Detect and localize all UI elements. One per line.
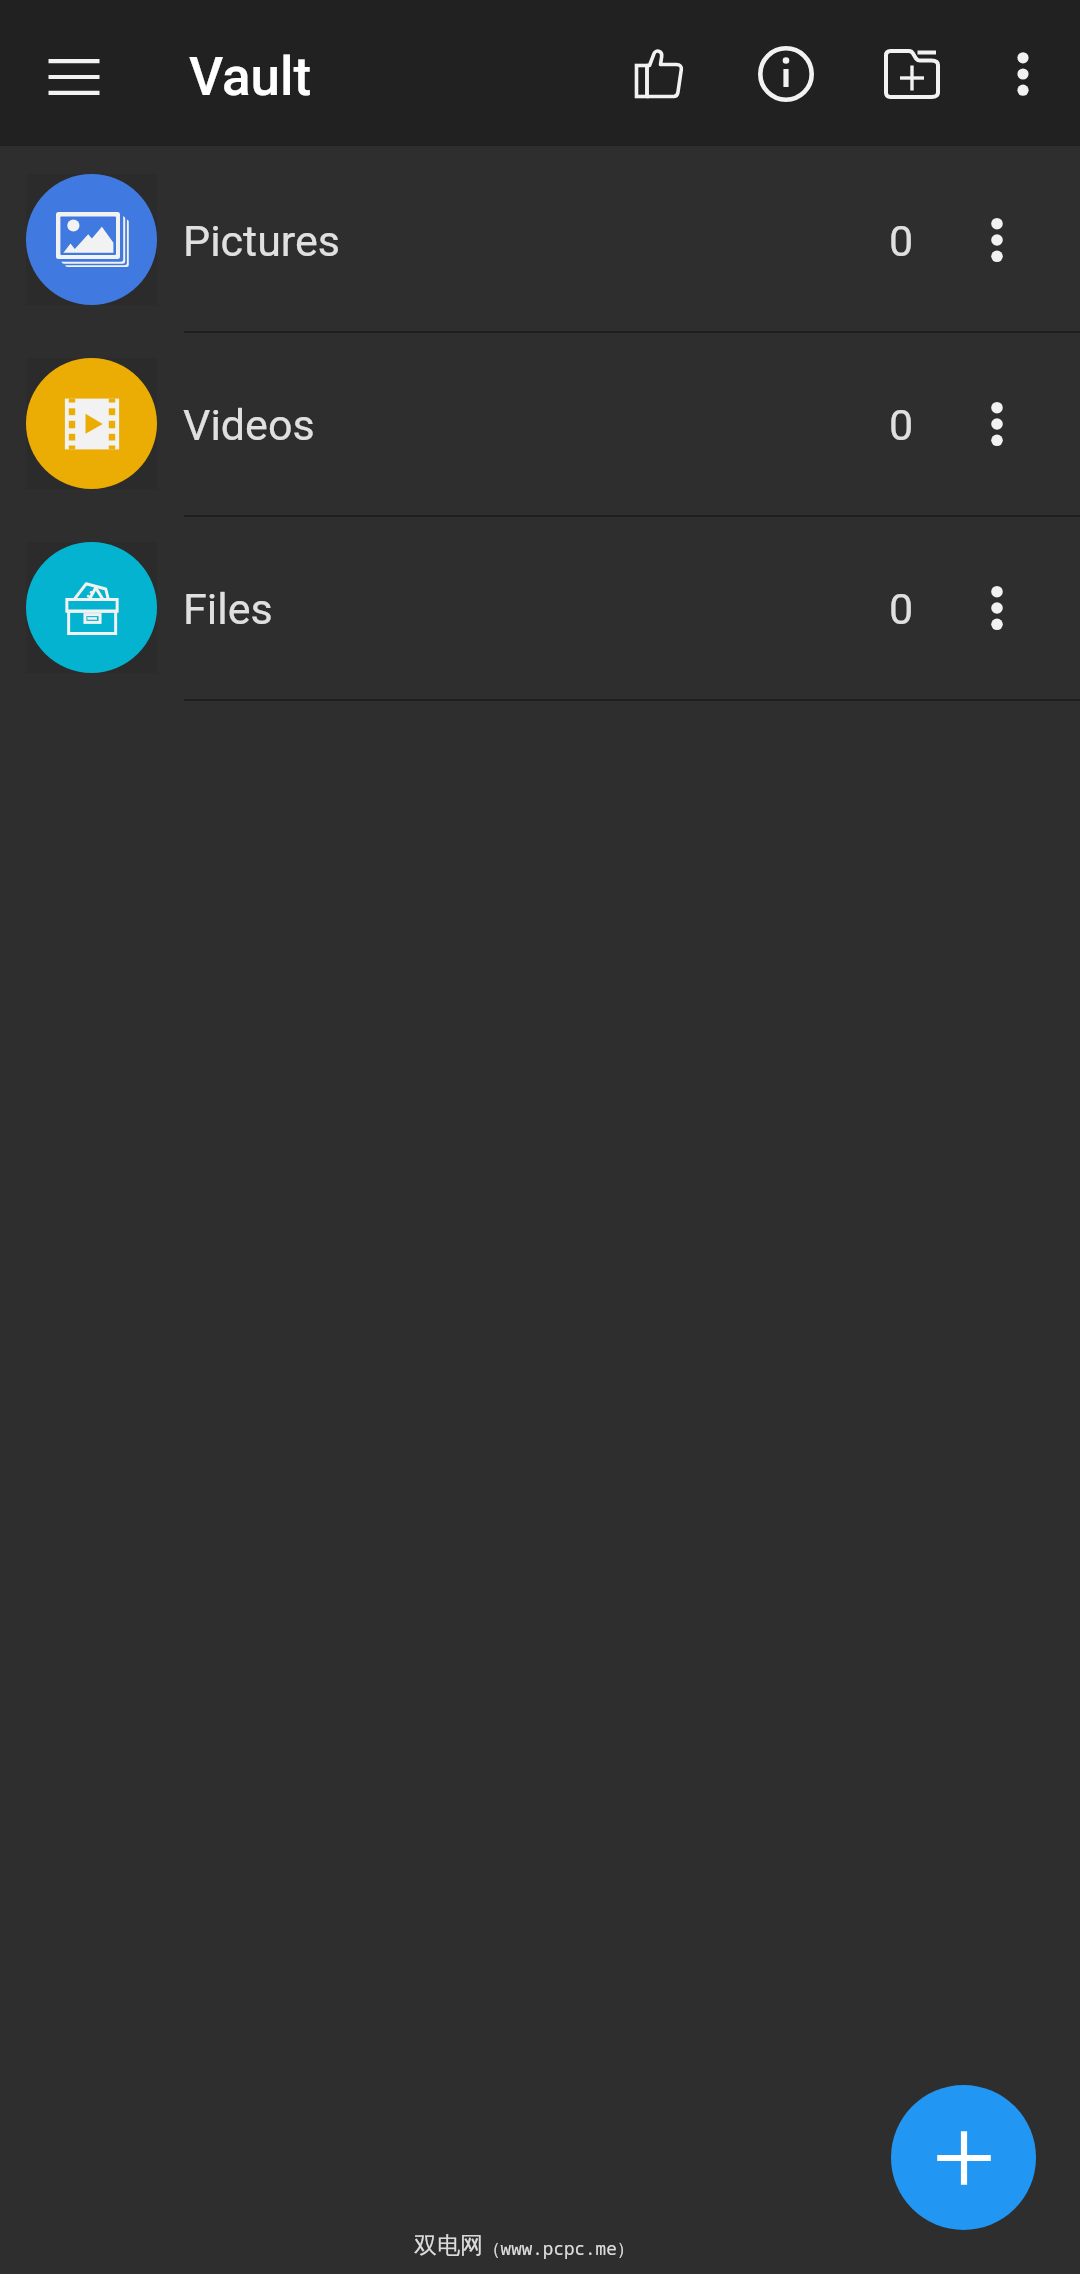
button[interactable]: More options xyxy=(977,28,1069,120)
staticText: Files xyxy=(183,584,273,634)
staticText: Vault xyxy=(189,46,312,108)
staticText: 双电网 xyxy=(414,2231,483,2260)
button[interactable]: Pictures xyxy=(0,146,1080,330)
button[interactable]: Add xyxy=(891,2085,1036,2230)
staticText: Pictures xyxy=(183,216,341,266)
staticText: 0 xyxy=(889,584,914,634)
staticText: （www.pcpc.me） xyxy=(483,2236,635,2260)
button[interactable]: More options for Pictures xyxy=(951,194,1043,286)
button[interactable]: Files xyxy=(0,514,1080,698)
staticText: Videos xyxy=(183,400,315,450)
staticText: 0 xyxy=(889,400,914,450)
button[interactable]: Menu xyxy=(28,31,120,123)
staticText: 0 xyxy=(889,216,914,266)
button[interactable]: Videos xyxy=(0,330,1080,514)
button[interactable]: New folder xyxy=(866,28,958,120)
button[interactable]: Info xyxy=(740,28,832,120)
button[interactable]: More options for Files xyxy=(951,562,1043,654)
button[interactable]: Like xyxy=(613,28,705,120)
button[interactable]: More options for Videos xyxy=(951,378,1043,470)
